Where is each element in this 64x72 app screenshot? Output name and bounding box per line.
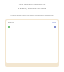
staticText: Your fantastic numbers at — [0, 3, 64, 6]
staticText: Lorem ipsum dolor sit amet consectetur a… — [0, 14, 64, 16]
staticText: a glance, anytime you need — [0, 7, 64, 10]
staticText: Balance — [8, 21, 14, 23]
staticText: More — [52, 21, 56, 23]
